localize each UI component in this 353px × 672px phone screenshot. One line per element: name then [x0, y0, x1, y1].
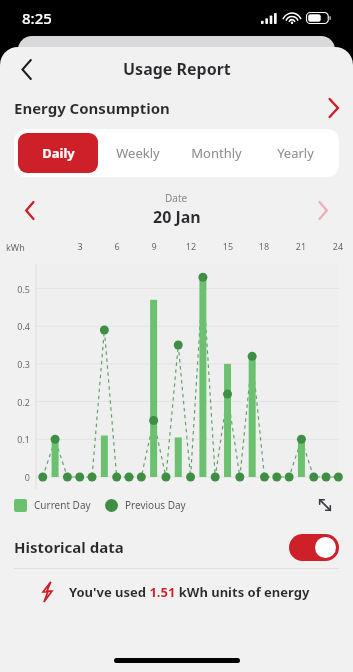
staticText: 6: [107, 240, 127, 252]
staticText: 9: [144, 240, 164, 252]
staticText: 24: [328, 240, 348, 252]
button[interactable]: Historical data toggle: [289, 534, 339, 561]
button[interactable]: Daily: [18, 133, 98, 173]
staticText: 15: [218, 240, 238, 252]
staticText: Daily: [42, 144, 75, 162]
staticText: Date: [165, 191, 188, 205]
button[interactable]: Back: [8, 50, 46, 88]
staticText: Usage Report: [123, 58, 231, 80]
staticText: 0.2: [2, 396, 30, 408]
button[interactable]: Energy Consumption: [0, 91, 353, 125]
button[interactable]: Historical data: [0, 526, 353, 568]
staticText: Energy Consumption: [14, 98, 170, 118]
button[interactable]: Monthly: [177, 133, 256, 173]
staticText: 8:25: [22, 8, 52, 28]
staticText: 20 Jan: [153, 206, 201, 228]
staticText: 12: [181, 240, 201, 252]
staticText: 21: [291, 240, 311, 252]
button[interactable]: Previous date: [14, 194, 46, 226]
button[interactable]: Next date: [307, 194, 339, 226]
staticText: 3: [70, 240, 90, 252]
button[interactable]: Weekly: [98, 133, 177, 173]
staticText: 0.1: [2, 433, 30, 445]
staticText: 0.4: [2, 320, 30, 332]
button[interactable]: Expand chart: [311, 491, 339, 519]
staticText: Weekly: [116, 144, 160, 162]
staticText: Previous Day: [125, 498, 186, 512]
staticText: Current Day: [34, 498, 91, 512]
staticText: 18: [254, 240, 274, 252]
staticText: Monthly: [191, 144, 242, 162]
staticText: Historical data: [14, 537, 124, 557]
staticText: 0: [2, 471, 30, 483]
staticText: 0.5: [2, 283, 30, 295]
staticText: 0.3: [2, 358, 30, 370]
button[interactable]: Yearly: [256, 133, 335, 173]
staticText: You've used 1.51 kWh units of energy: [69, 583, 310, 601]
staticText: kWh: [6, 241, 25, 253]
staticText: Yearly: [277, 144, 314, 162]
